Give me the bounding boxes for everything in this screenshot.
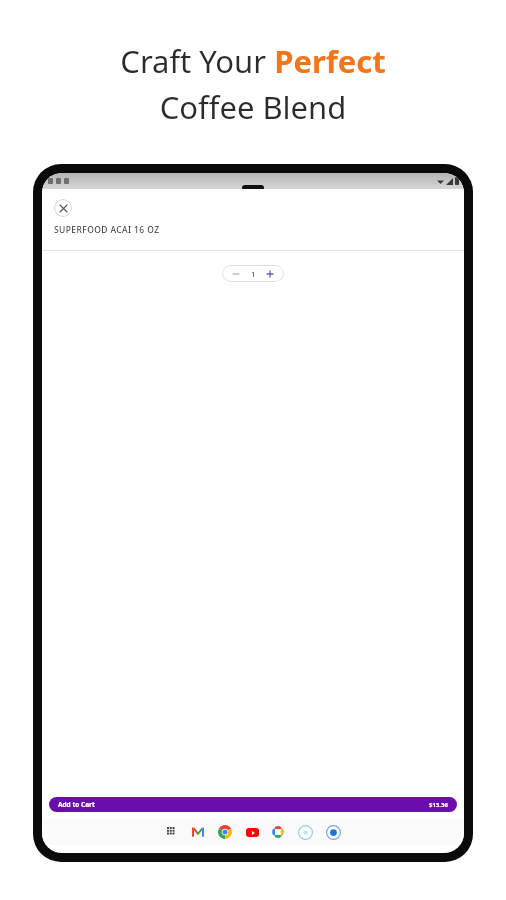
button[interactable]: Google Photos xyxy=(271,825,285,839)
button[interactable]: App xyxy=(297,824,313,840)
staticText: Craft Your Perfect xyxy=(0,40,506,82)
staticText: Add to Cart xyxy=(58,800,95,809)
button[interactable]: Increase quantity xyxy=(262,266,278,282)
button[interactable]: Chrome xyxy=(217,824,233,840)
button[interactable]: Gmail xyxy=(191,825,205,839)
staticText: $13.36 xyxy=(429,801,448,809)
staticText: Coffee Blend xyxy=(0,86,506,128)
staticText: SUPERFOOD ACAI 16 OZ xyxy=(54,224,160,236)
button[interactable]: App xyxy=(325,824,341,840)
button[interactable]: Decrease quantity xyxy=(228,266,244,282)
button[interactable]: Close xyxy=(54,199,72,217)
button[interactable]: All apps xyxy=(165,825,179,839)
staticText: 1 xyxy=(251,269,256,279)
button[interactable]: YouTube xyxy=(245,825,259,839)
button[interactable]: Add to Cart xyxy=(49,797,457,812)
